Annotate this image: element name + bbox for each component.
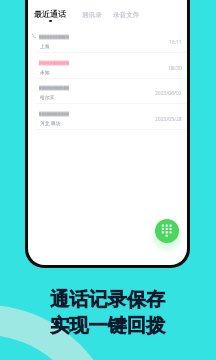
staticText: 哈尔滨 <box>40 94 55 100</box>
button[interactable]: 哈尔滨 <box>28 78 187 104</box>
staticText: 通讯录 <box>82 11 102 19</box>
button[interactable]: 通讯录 <box>82 11 102 19</box>
staticText: 2023/06/02 <box>155 90 182 97</box>
button[interactable]: 上海 <box>28 27 187 53</box>
staticText: 录音文件 <box>113 11 140 19</box>
staticText: 实现一键回拨 <box>50 314 166 338</box>
button[interactable]: Dialpad <box>155 219 179 243</box>
button[interactable]: 未知 <box>28 53 187 79</box>
staticText: 河北 廊坊 <box>40 120 61 127</box>
staticText: 未知 <box>40 69 50 75</box>
button[interactable]: 录音文件 <box>113 11 140 19</box>
button[interactable]: 最近通话 <box>34 9 66 22</box>
staticText: 08:30 <box>169 65 182 72</box>
staticText: 最近通话 <box>34 9 66 19</box>
staticText: 10:11 <box>169 39 182 46</box>
staticText: 上海 <box>40 43 50 49</box>
button[interactable]: 河北 廊坊 <box>28 104 187 130</box>
staticText: 通话记录保存 <box>50 288 166 312</box>
staticText: 2023/05/28 <box>155 116 182 123</box>
